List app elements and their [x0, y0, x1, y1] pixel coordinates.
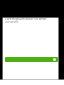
button[interactable]: Profile	[5, 57, 58, 62]
staticText: Lorem ipsum dolor sit amet	[5, 17, 47, 21]
staticText: consecte	[5, 20, 19, 24]
other: Profile	[53, 58, 56, 61]
